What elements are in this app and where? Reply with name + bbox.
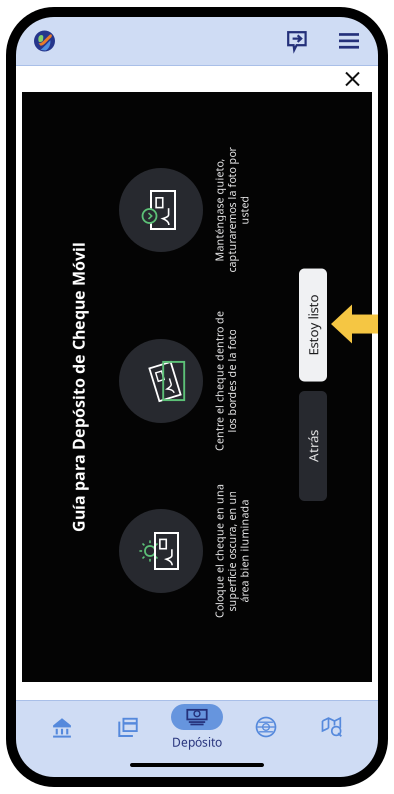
button[interactable]: Mensajes	[282, 26, 312, 56]
staticText: capturaremos la foto por	[169, 203, 294, 217]
button[interactable]: Inicio	[30, 26, 59, 55]
staticText: superficie oscura, en un	[171, 544, 292, 558]
button[interactable]: Ubicaciones	[299, 704, 365, 750]
staticText: Estoy listo	[282, 316, 343, 334]
button[interactable]: Depósito	[161, 704, 233, 750]
staticText: área bien iluminada	[193, 544, 296, 558]
staticText: Atrás	[297, 437, 329, 455]
staticText: Centre el cheque dentro de	[149, 374, 289, 388]
staticText: usted	[230, 203, 259, 217]
staticText: Manténgase quieto,	[168, 203, 271, 217]
button[interactable]: Cuentas	[29, 704, 95, 750]
button[interactable]: Atrás	[299, 391, 327, 501]
button[interactable]: Estoy listo	[299, 268, 327, 381]
staticText: Guía para Depósito de Cheque Móvil	[0, 376, 223, 398]
button[interactable]: Tarjetas	[95, 704, 161, 750]
staticText: Coloque el cheque en una	[152, 544, 286, 558]
staticText: los bordes de la foto	[180, 374, 283, 388]
button[interactable]: Internacional	[233, 704, 299, 750]
button[interactable]: Cerrar	[339, 65, 366, 92]
button[interactable]: Menú	[334, 27, 364, 54]
staticText: Depósito	[172, 734, 222, 750]
